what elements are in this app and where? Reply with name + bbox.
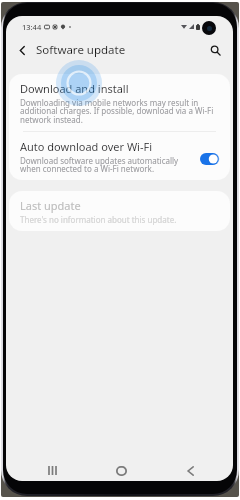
button[interactable]: Navigate up — [13, 41, 31, 59]
button[interactable]: Recent apps — [42, 460, 63, 481]
button[interactable]: Auto download over Wi-Fi — [9, 132, 230, 180]
staticText: Download and install — [20, 81, 129, 96]
staticText: Auto download over Wi-Fi — [20, 139, 153, 154]
staticText: 13:44 — [22, 22, 42, 32]
staticText: There's no information about this update… — [20, 214, 177, 225]
button[interactable]: Auto download over Wi-Fi — [200, 153, 220, 165]
staticText: Software update — [36, 42, 126, 58]
button[interactable]: Home — [111, 460, 132, 481]
staticText: Downloading via mobile networks may resu… — [20, 97, 218, 125]
staticText: Download software updates automatically … — [20, 155, 192, 174]
button[interactable]: Download and install — [9, 74, 230, 131]
button[interactable]: Search — [206, 41, 224, 59]
button[interactable]: Back — [180, 460, 201, 481]
button[interactable]: Last update — [9, 191, 230, 231]
staticText: Last update — [20, 198, 81, 213]
